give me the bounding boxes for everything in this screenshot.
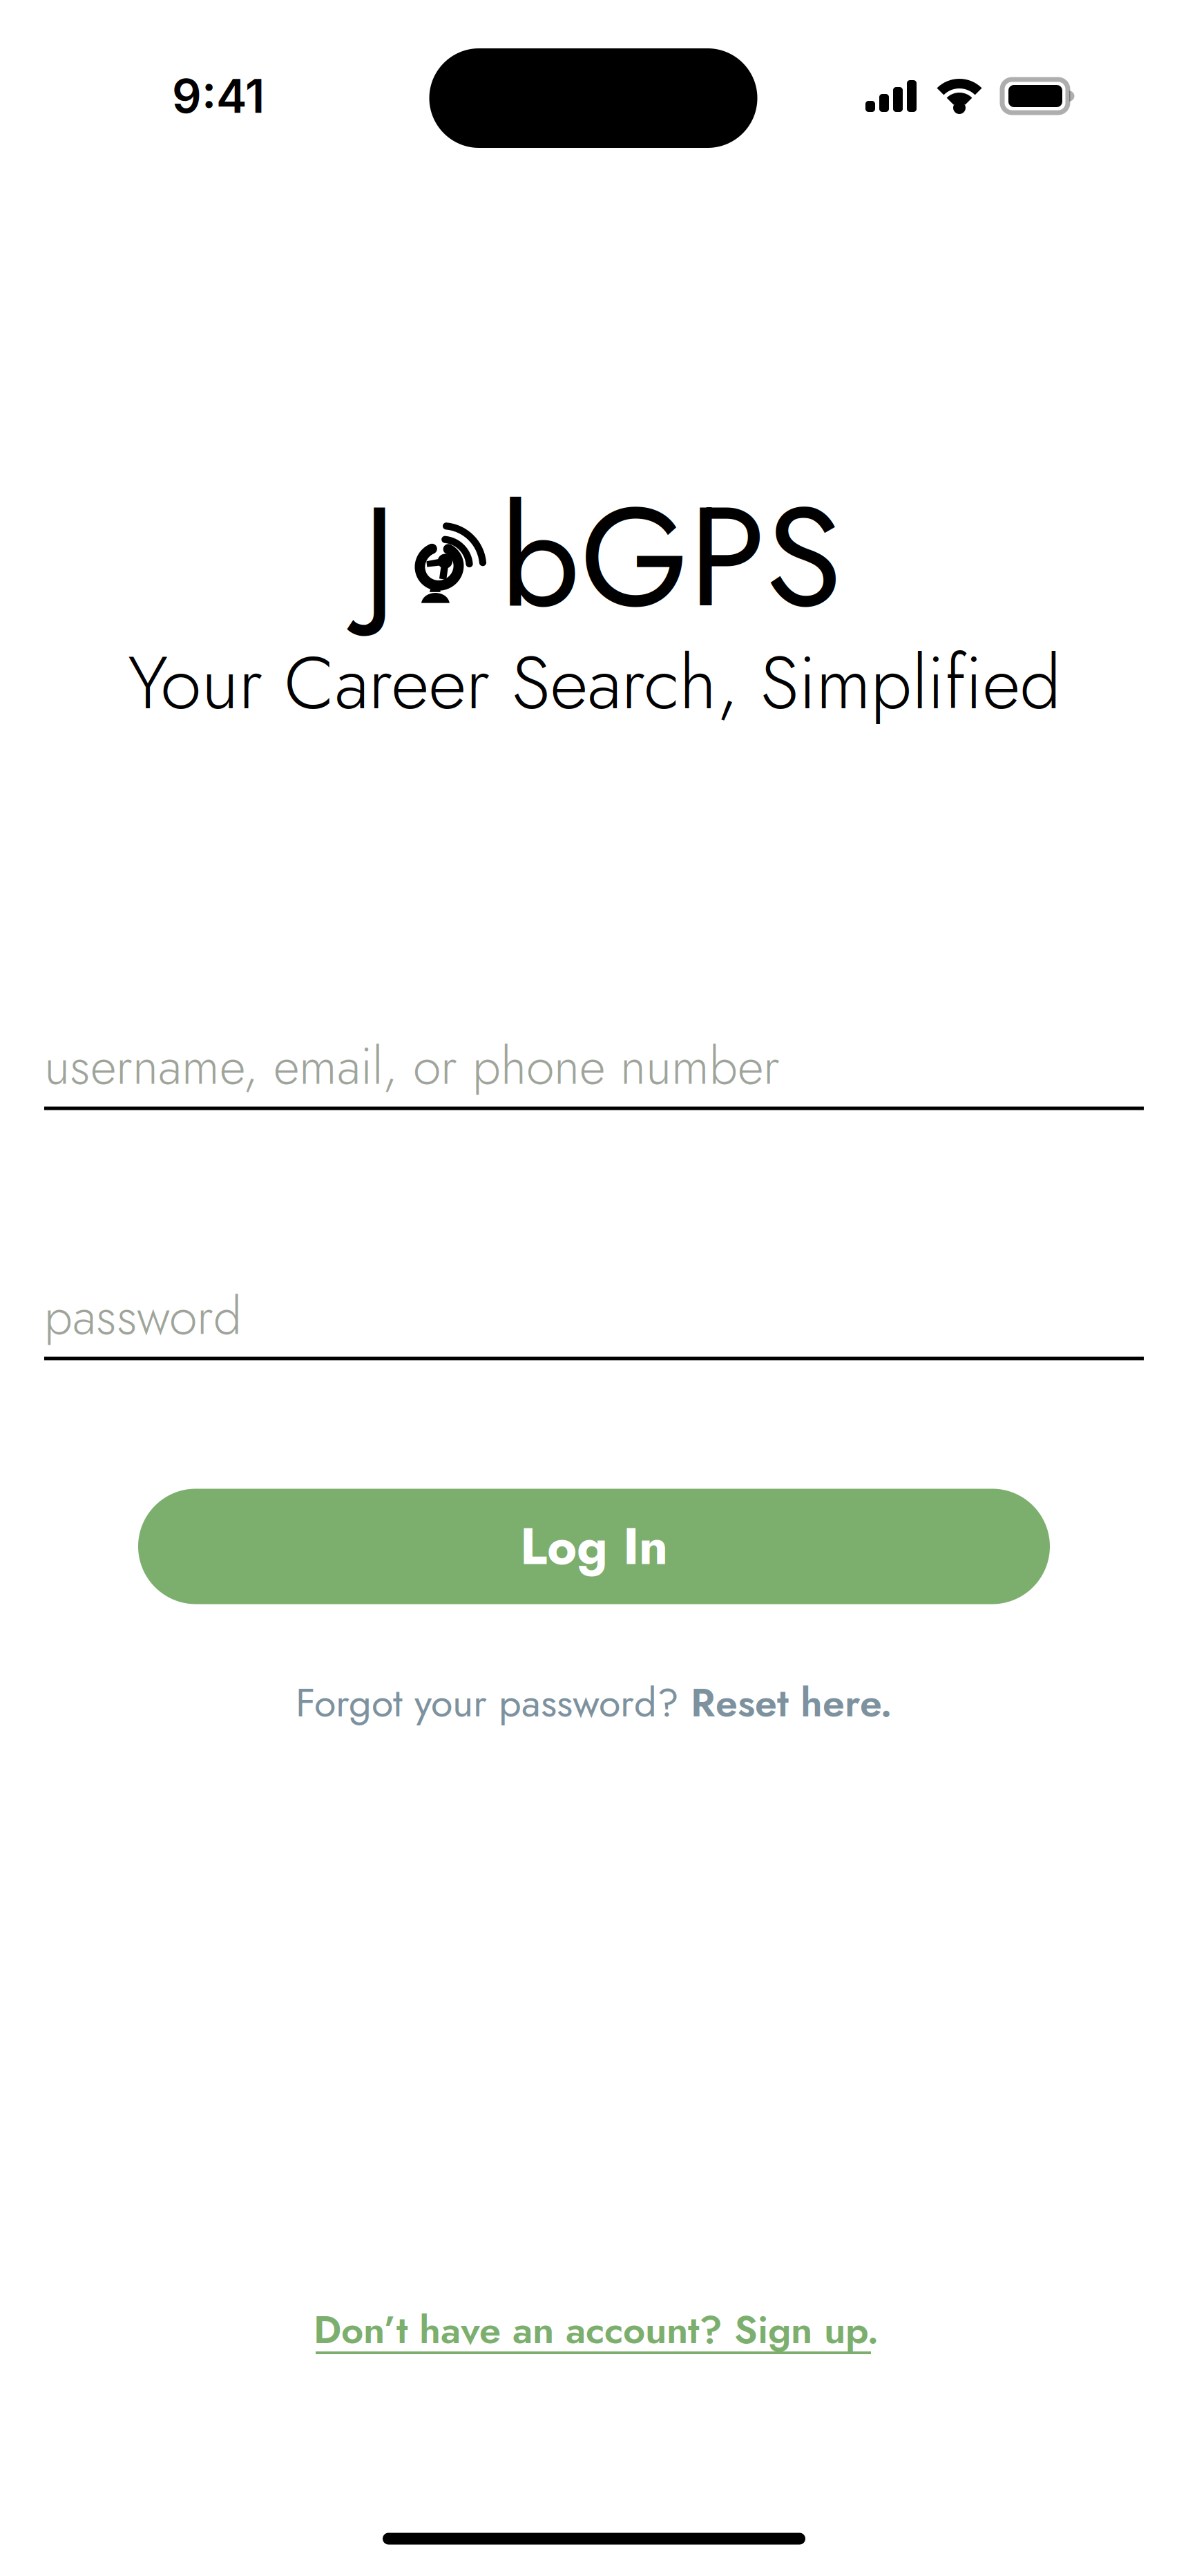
staticText: username, email, or phone number bbox=[44, 1030, 780, 1103]
button[interactable]: Log In bbox=[138, 1489, 1050, 1604]
button[interactable]: Don’t have an account? Sign up. bbox=[314, 2302, 908, 2353]
staticText: J bbox=[363, 456, 396, 658]
staticText: Reset here. bbox=[691, 1674, 892, 1731]
staticText: 9:41 bbox=[172, 68, 265, 124]
staticText: Your Career Search, Simplified bbox=[128, 629, 1061, 736]
staticText: Don’t have an account? Sign up. bbox=[314, 2302, 879, 2358]
staticText: bGPS bbox=[500, 456, 842, 658]
staticText: Forgot your password? bbox=[296, 1674, 691, 1731]
button[interactable]: Forgot your password? bbox=[279, 1662, 909, 1744]
staticText: Log In bbox=[520, 1510, 668, 1583]
staticText: password bbox=[44, 1280, 242, 1353]
